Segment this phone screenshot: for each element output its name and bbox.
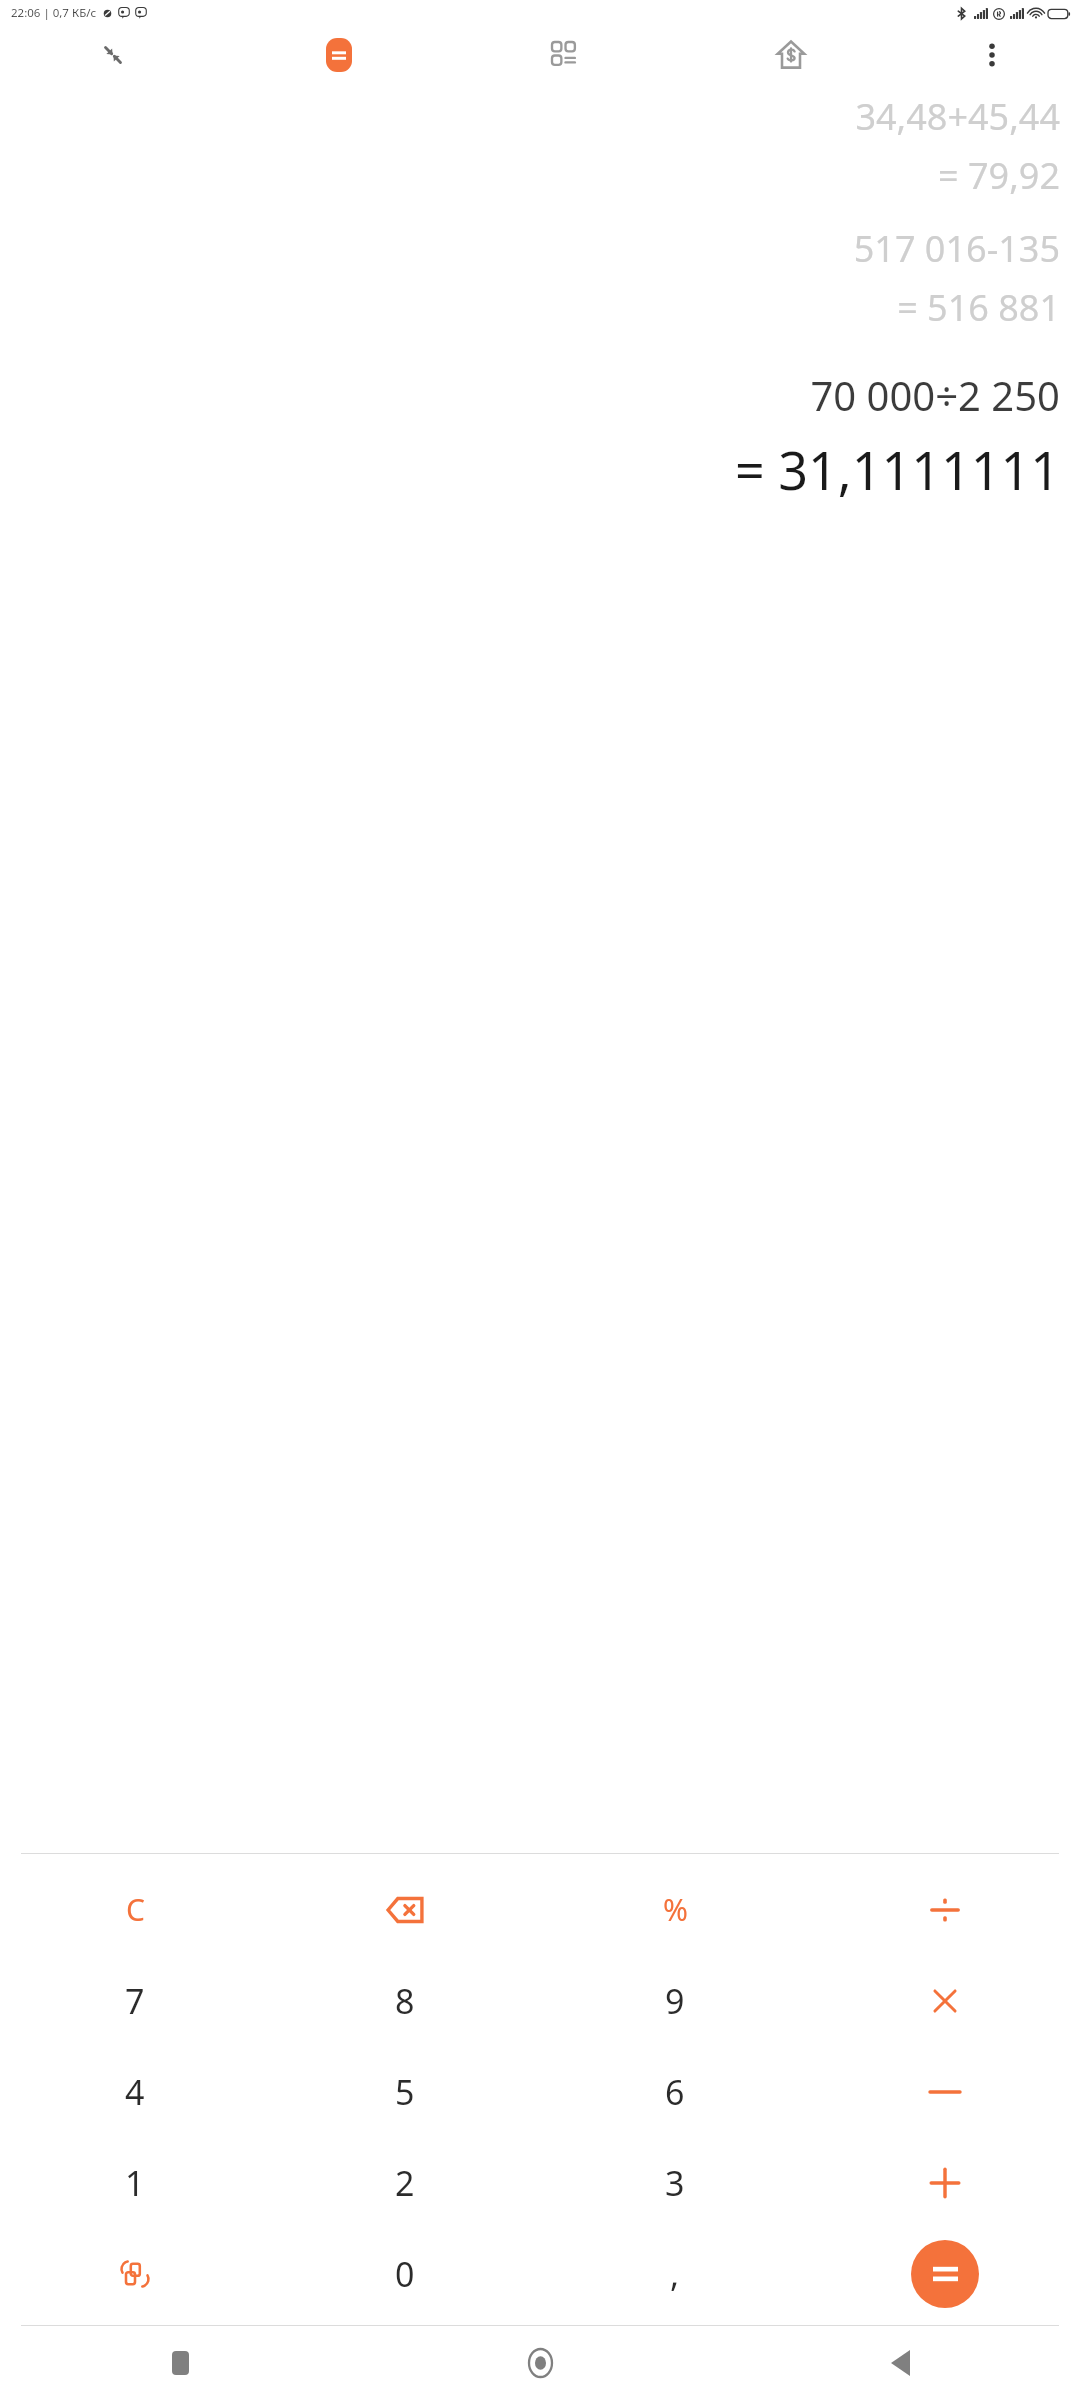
button[interactable]: , (540, 2228, 810, 2319)
staticText: 5 (395, 2069, 415, 2115)
staticText: 2 (395, 2160, 415, 2206)
button[interactable]: 0 (270, 2228, 540, 2319)
staticText: = 516 881 (20, 283, 1060, 332)
button[interactable] (810, 2137, 1080, 2228)
staticText: 3 (665, 2160, 685, 2206)
button[interactable]: 4 (0, 2046, 270, 2137)
staticText: % (663, 1889, 688, 1930)
button[interactable]: 9 (540, 1955, 810, 2046)
staticText: 34,48+45,44 (20, 92, 1060, 141)
button[interactable]: C (0, 1864, 270, 1955)
staticText: 70 000÷2 250 (20, 368, 1060, 422)
staticText: 8 (395, 1978, 415, 2024)
staticText: , (670, 2251, 680, 2297)
staticText: 9 (665, 1978, 685, 2024)
button[interactable]: Equals (911, 2240, 979, 2308)
button[interactable]: Collapse (0, 26, 226, 84)
button[interactable]: Back (720, 2326, 1080, 2400)
staticText: = 31,1111111 (20, 434, 1060, 505)
button[interactable] (810, 2046, 1080, 2137)
button[interactable]: 7 (0, 1955, 270, 2046)
button[interactable]: More options (904, 26, 1080, 84)
staticText: 6 (665, 2069, 685, 2115)
staticText: 4 (125, 2069, 145, 2115)
staticText: 1 (125, 2160, 145, 2206)
button[interactable]: % (540, 1864, 810, 1955)
button[interactable] (810, 1864, 1080, 1955)
staticText: C (126, 1889, 145, 1930)
button[interactable]: Backspace (270, 1864, 540, 1955)
button[interactable] (810, 1955, 1080, 2046)
button[interactable]: 5 (270, 2046, 540, 2137)
button[interactable]: 2 (270, 2137, 540, 2228)
button[interactable]: 3 (540, 2137, 810, 2228)
button[interactable]: Home (360, 2326, 720, 2400)
staticText: = 79,92 (20, 151, 1060, 200)
button[interactable]: Mortgage (678, 26, 904, 84)
button[interactable]: Layout (452, 26, 678, 84)
staticText: 7 (125, 1978, 145, 2024)
staticText: 0 (395, 2251, 415, 2297)
button[interactable]: 6 (540, 2046, 810, 2137)
staticText: 22:06 | 0,7 КБ/с (11, 5, 97, 21)
button[interactable]: Convert (0, 2228, 270, 2319)
button[interactable]: 8 (270, 1955, 540, 2046)
staticText: 517 016-135 (20, 224, 1060, 273)
button[interactable]: Recents (0, 2326, 360, 2400)
button[interactable]: Equals mode (226, 26, 452, 84)
button[interactable]: 1 (0, 2137, 270, 2228)
